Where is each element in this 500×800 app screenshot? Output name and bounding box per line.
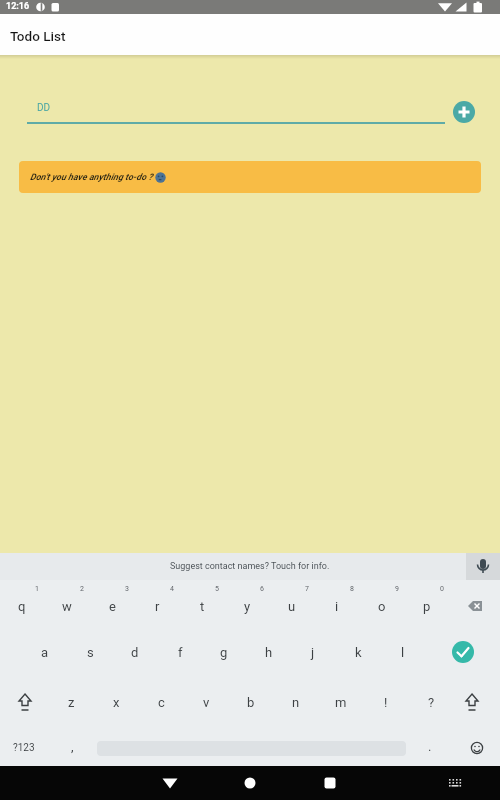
staticText: 7 xyxy=(305,585,309,593)
button[interactable]: a xyxy=(27,639,63,665)
staticText: f xyxy=(178,645,183,660)
button[interactable]: k xyxy=(340,639,376,665)
staticText: g xyxy=(220,645,228,660)
button[interactable]: Suggest contact names? Touch for info. xyxy=(0,553,500,580)
staticText: 0 xyxy=(440,585,444,593)
button[interactable]: m xyxy=(323,689,359,715)
button[interactable]: r xyxy=(139,593,175,619)
button[interactable] xyxy=(458,594,492,618)
staticText: 5 xyxy=(215,585,219,593)
button[interactable]: s xyxy=(72,639,108,665)
staticText: s xyxy=(87,645,94,660)
button[interactable]: g xyxy=(206,639,242,665)
button[interactable]: . xyxy=(416,733,444,759)
button[interactable]: e xyxy=(94,593,130,619)
button[interactable]: t xyxy=(184,593,220,619)
staticText: t xyxy=(200,599,205,614)
staticText: . xyxy=(428,739,432,754)
staticText: q xyxy=(18,599,26,614)
button[interactable]: y xyxy=(229,593,265,619)
staticText: ?123 xyxy=(13,742,35,754)
staticText: l xyxy=(401,645,405,660)
button[interactable] xyxy=(11,688,39,716)
staticText: c xyxy=(158,695,165,710)
staticText: Don't you have anything to-do ? xyxy=(30,172,155,183)
button[interactable] xyxy=(464,735,490,761)
button[interactable]: p xyxy=(409,593,445,619)
staticText: Todo List xyxy=(10,28,66,44)
button[interactable]: u xyxy=(274,593,310,619)
button[interactable]: , xyxy=(58,733,86,759)
staticText: v xyxy=(203,695,210,710)
staticText: u xyxy=(288,599,296,614)
staticText: j xyxy=(311,645,315,660)
button[interactable]: n xyxy=(278,689,314,715)
staticText: , xyxy=(71,739,74,754)
button[interactable] xyxy=(234,767,266,799)
button[interactable]: l xyxy=(385,639,421,665)
button[interactable]: i xyxy=(319,593,355,619)
staticText: p xyxy=(423,599,431,614)
button[interactable]: v xyxy=(188,689,224,715)
button[interactable] xyxy=(453,101,475,123)
staticText: 3 xyxy=(125,585,129,593)
staticText: o xyxy=(378,599,386,614)
button[interactable] xyxy=(452,641,474,663)
button[interactable]: Don't you have anything to-do ? xyxy=(19,161,481,193)
staticText: e xyxy=(109,599,116,614)
button[interactable]: x xyxy=(98,689,134,715)
button[interactable]: ?123 xyxy=(6,736,42,760)
button[interactable]: j xyxy=(295,639,331,665)
staticText: h xyxy=(265,645,273,660)
staticText: 9 xyxy=(395,585,399,593)
staticText: d xyxy=(131,645,139,660)
button[interactable]: d xyxy=(117,639,153,665)
button[interactable]: c xyxy=(143,689,179,715)
button[interactable] xyxy=(466,553,500,580)
staticText: 2 xyxy=(80,585,84,593)
button[interactable]: o xyxy=(364,593,400,619)
staticText: r xyxy=(155,599,160,614)
staticText: Suggest contact names? Touch for info. xyxy=(170,561,330,572)
staticText: 8 xyxy=(350,585,354,593)
staticText: DD xyxy=(37,102,51,114)
staticText: m xyxy=(335,695,347,710)
button[interactable]: h xyxy=(251,639,287,665)
button[interactable] xyxy=(439,768,471,800)
staticText: 1 xyxy=(35,585,39,593)
staticText: y xyxy=(244,599,251,614)
staticText: k xyxy=(355,645,362,660)
button[interactable]: w xyxy=(49,593,85,619)
button[interactable]: b xyxy=(233,689,269,715)
staticText: a xyxy=(41,645,49,660)
button[interactable]: f xyxy=(162,639,198,665)
staticText: ! xyxy=(384,695,388,710)
button[interactable] xyxy=(154,767,186,799)
staticText: 4 xyxy=(170,585,174,593)
button[interactable] xyxy=(314,767,346,799)
staticText: i xyxy=(335,599,339,614)
staticText: 12:16 xyxy=(6,1,30,12)
staticText: x xyxy=(113,695,120,710)
button[interactable] xyxy=(458,688,486,716)
button[interactable]: ! xyxy=(368,689,404,715)
staticText: w xyxy=(62,599,72,614)
staticText: z xyxy=(68,695,75,710)
button[interactable]: z xyxy=(53,689,89,715)
staticText: ? xyxy=(428,695,435,710)
staticText: n xyxy=(292,695,300,710)
staticText: 6 xyxy=(260,585,264,593)
staticText: b xyxy=(247,695,255,710)
button[interactable]: q xyxy=(4,593,40,619)
button[interactable]: ? xyxy=(413,689,449,715)
